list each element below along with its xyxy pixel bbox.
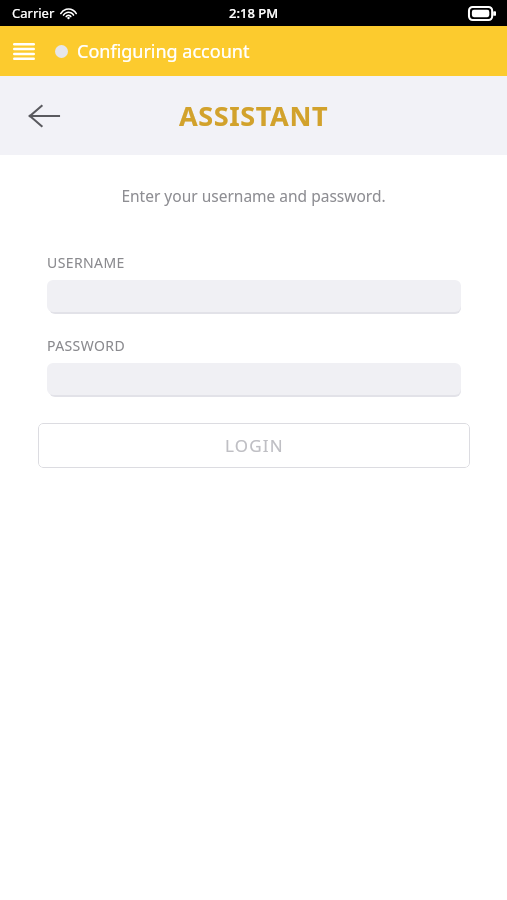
- staticText: PASSWORD: [47, 336, 126, 355]
- staticText: LOGIN: [225, 434, 284, 457]
- button[interactable]: LOGIN: [38, 423, 470, 468]
- button[interactable]: Back: [22, 94, 66, 138]
- staticText: ASSISTANT: [179, 97, 329, 134]
- staticText: Enter your username and password.: [0, 185, 507, 206]
- staticText: 2:18 PM: [229, 4, 279, 22]
- staticText: Carrier: [12, 4, 55, 22]
- button[interactable]: Menu: [6, 33, 42, 69]
- staticText: USERNAME: [47, 253, 125, 272]
- staticText: Configuring account: [77, 39, 250, 64]
